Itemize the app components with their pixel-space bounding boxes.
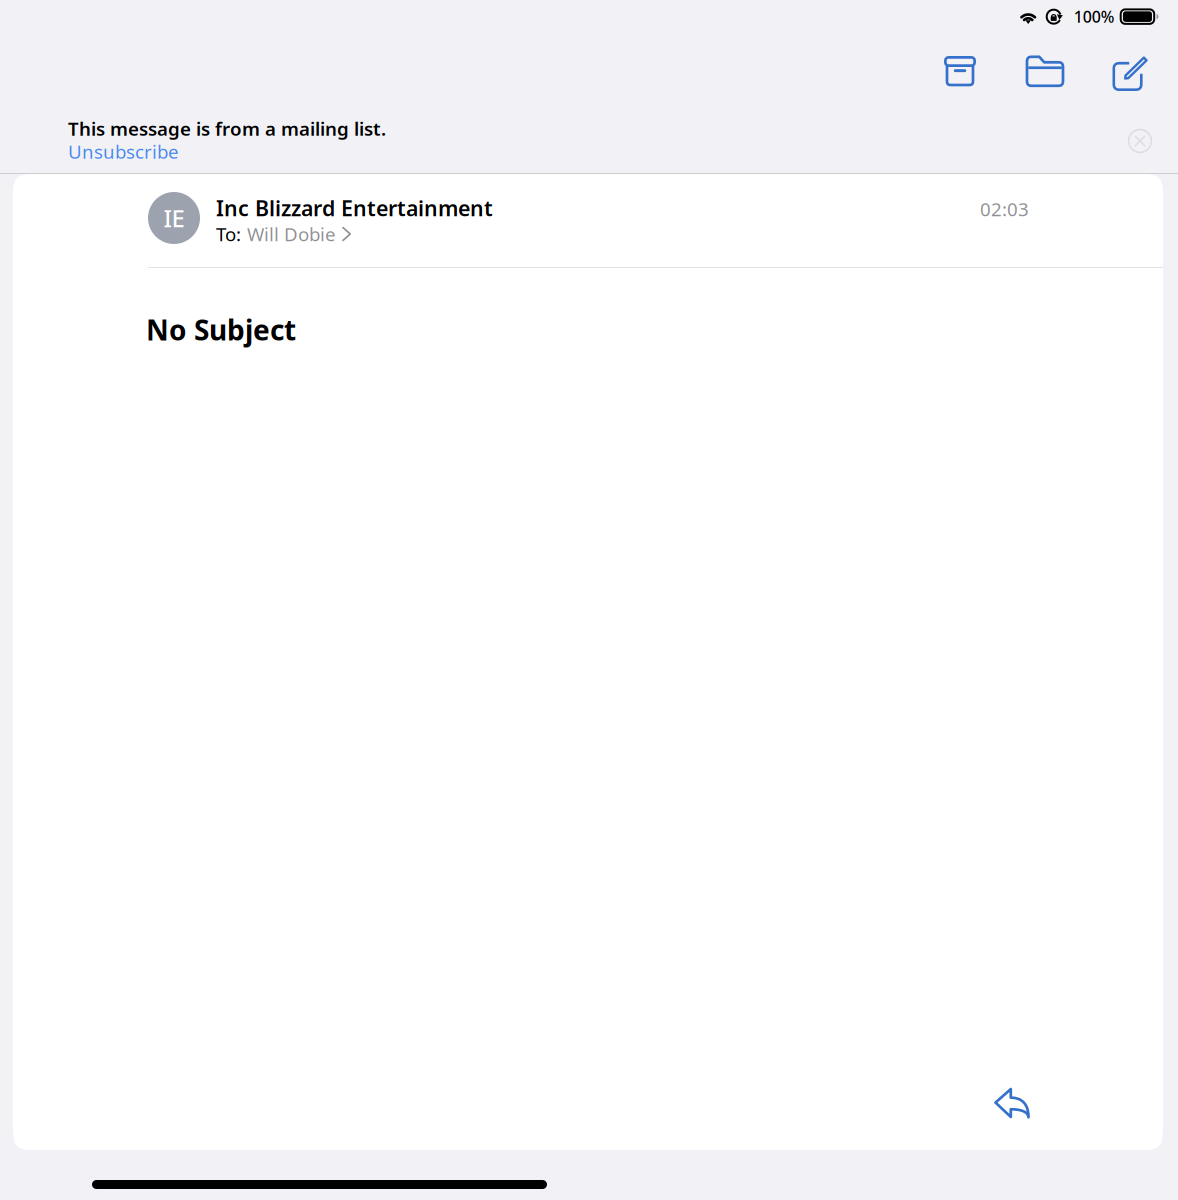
button[interactable]: Archive — [934, 46, 986, 98]
button[interactable]: Reply — [981, 1074, 1043, 1132]
staticText: 100% — [1074, 6, 1115, 27]
staticText: No Subject — [146, 311, 296, 348]
staticText: To: — [216, 222, 241, 246]
staticText: Unsubscribe — [68, 139, 179, 164]
button[interactable]: Dismiss — [1120, 121, 1160, 161]
button[interactable]: Compose — [1104, 46, 1156, 98]
button[interactable]: Move to folder — [1019, 46, 1071, 98]
button[interactable]: Unsubscribe — [68, 140, 179, 163]
staticText: Inc Blizzard Entertainment — [216, 194, 493, 222]
staticText: This message is from a mailing list. — [68, 116, 386, 141]
staticText: IE — [163, 202, 184, 234]
staticText: 02:03 — [980, 197, 1029, 221]
staticText: Will Dobie — [247, 222, 336, 246]
